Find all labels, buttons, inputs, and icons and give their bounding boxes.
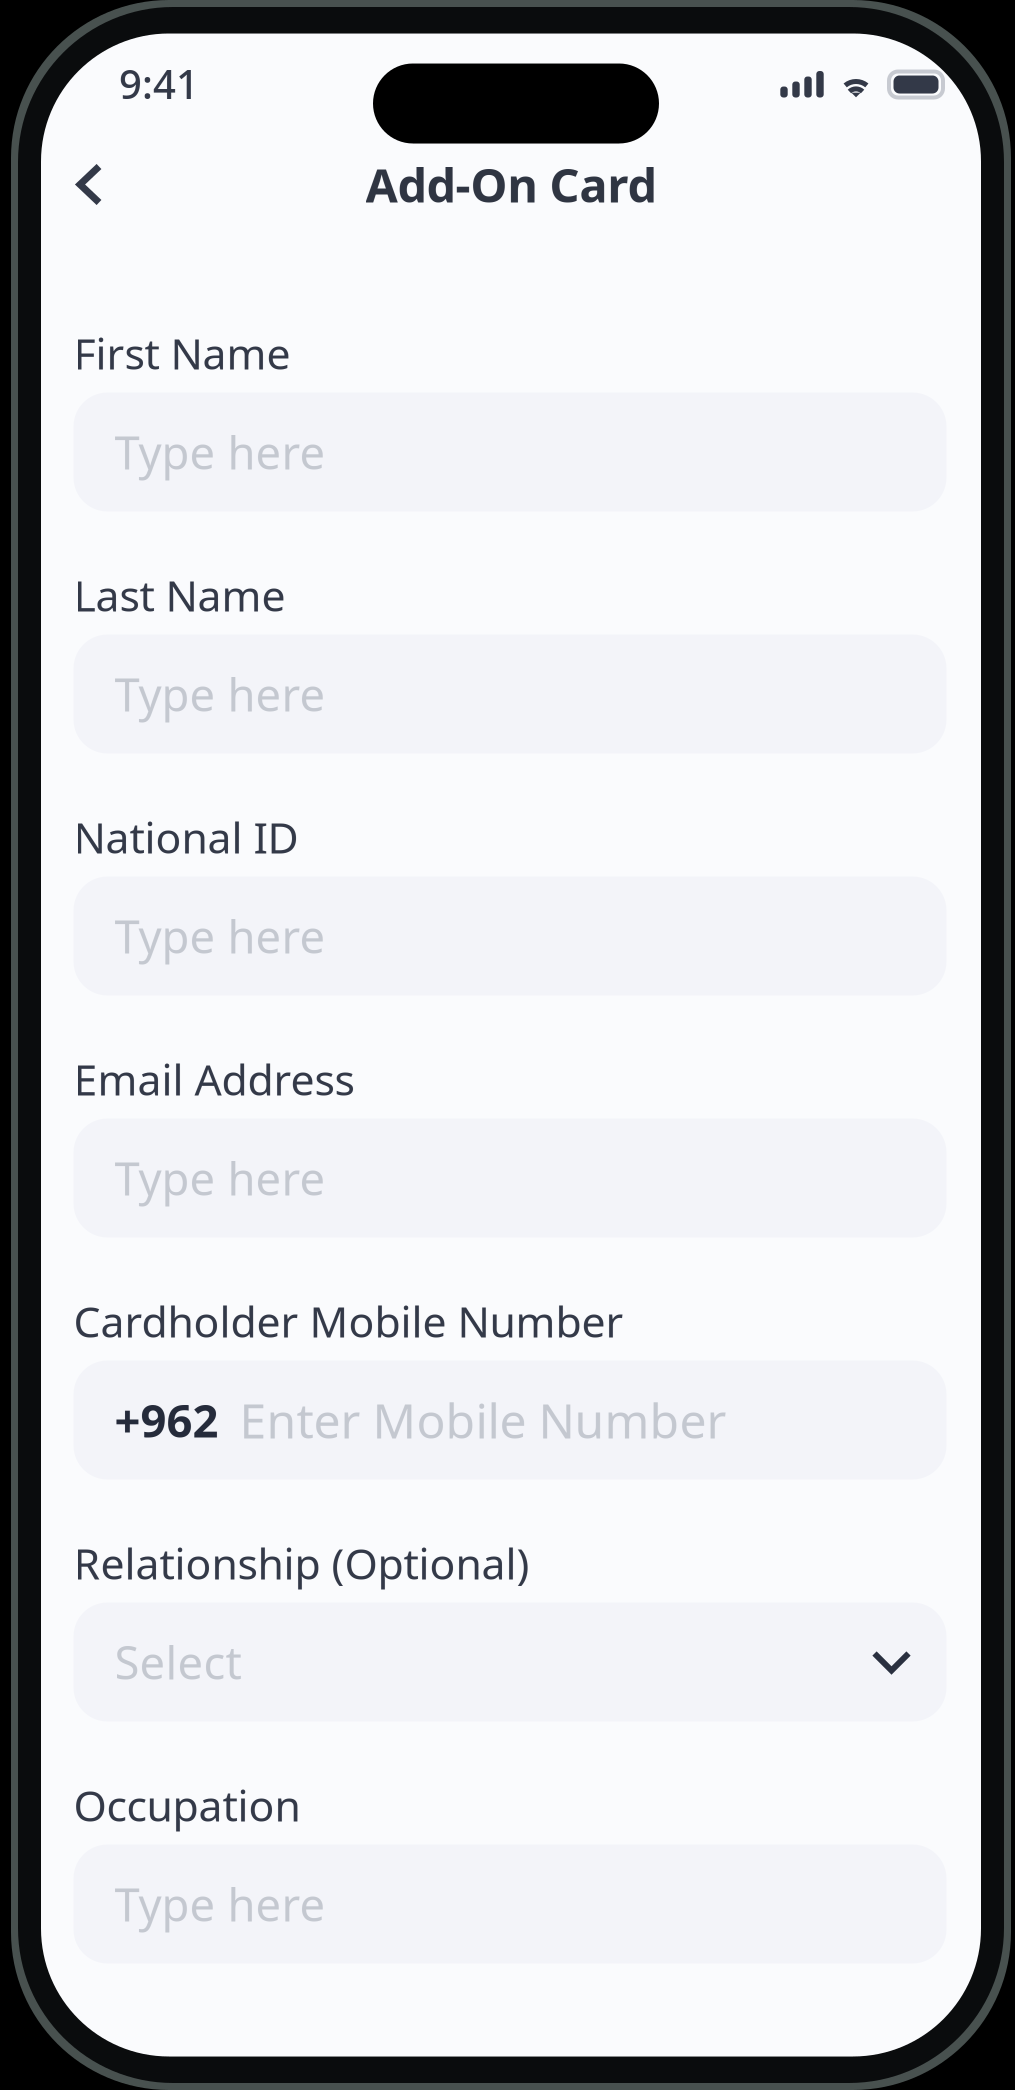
staticText: Last Name bbox=[73, 566, 285, 623]
staticText: Relationship (Optional) bbox=[73, 1534, 529, 1591]
staticText: +962 bbox=[114, 1390, 218, 1450]
staticText: Enter Mobile Number bbox=[239, 1388, 726, 1452]
button[interactable]: Type here bbox=[73, 1118, 946, 1237]
button[interactable]: Type here bbox=[73, 876, 946, 995]
staticText: Email Address bbox=[73, 1050, 354, 1107]
staticText: Occupation bbox=[73, 1776, 300, 1833]
staticText: 9:41 bbox=[119, 57, 199, 110]
staticText: Type here bbox=[114, 664, 325, 724]
staticText: First Name bbox=[73, 324, 290, 381]
staticText: National ID bbox=[73, 808, 298, 865]
button[interactable]: Back bbox=[41, 145, 121, 223]
button[interactable]: +962 bbox=[73, 1360, 946, 1479]
button[interactable]: Type here bbox=[73, 1844, 946, 1963]
staticText: Type here bbox=[114, 1148, 325, 1208]
staticText: Type here bbox=[114, 1874, 325, 1934]
button[interactable]: Select bbox=[73, 1602, 946, 1721]
button[interactable]: Type here bbox=[73, 392, 946, 511]
staticText: Cardholder Mobile Number bbox=[73, 1292, 623, 1349]
staticText: Type here bbox=[114, 422, 325, 482]
staticText: Type here bbox=[114, 906, 325, 966]
staticText: Add-On Card bbox=[365, 153, 656, 215]
staticText: Select bbox=[114, 1632, 241, 1692]
button[interactable]: Type here bbox=[73, 634, 946, 753]
